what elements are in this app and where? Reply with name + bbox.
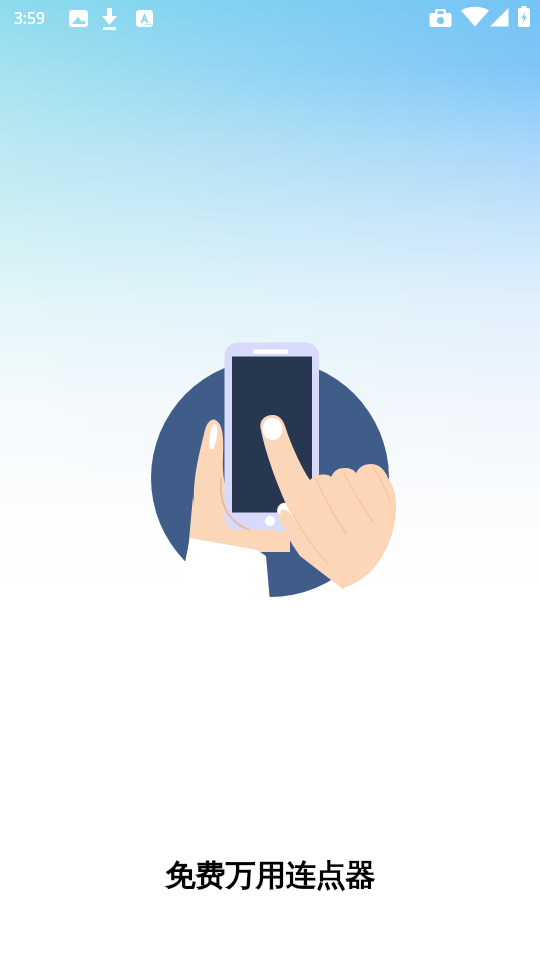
staticText: 3:59 — [14, 7, 45, 28]
staticText: 免费万用连点器 — [0, 857, 540, 895]
